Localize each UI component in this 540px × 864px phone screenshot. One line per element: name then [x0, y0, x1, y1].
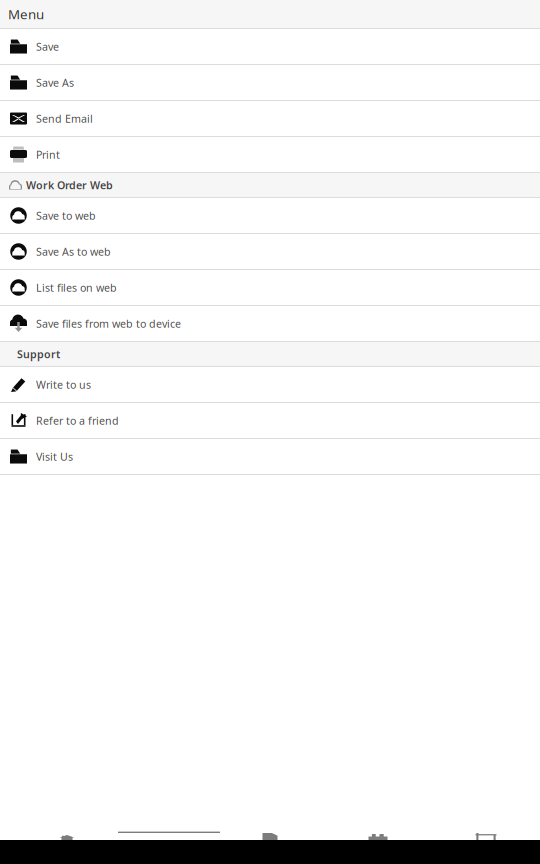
staticText: Send Email — [36, 111, 93, 126]
staticText: Support — [17, 347, 60, 361]
staticText: List files on web — [36, 280, 117, 295]
staticText: Write to us — [36, 377, 91, 392]
button[interactable]: Save As to web — [0, 234, 540, 270]
button[interactable]: Visit Us — [0, 439, 540, 475]
staticText: Menu — [8, 5, 44, 23]
staticText: Save As — [36, 75, 74, 90]
button[interactable]: List files on web — [0, 270, 540, 306]
button[interactable]: Refer to a friend — [0, 403, 540, 439]
button[interactable]: Send Email — [0, 101, 540, 137]
button[interactable]: Save to web — [0, 198, 540, 234]
staticText: Work Order Web — [26, 178, 113, 192]
staticText: Save files from web to device — [36, 316, 181, 331]
button[interactable]: Write to us — [0, 367, 540, 403]
staticText: Visit Us — [36, 449, 73, 464]
button[interactable]: Dispatch — [324, 809, 432, 840]
button[interactable]: Work Orders — [108, 809, 216, 840]
button[interactable]: Save files from web to device — [0, 306, 540, 342]
staticText: Save As to web — [36, 244, 111, 259]
button[interactable]: Print — [0, 137, 540, 173]
button[interactable]: Save As — [0, 65, 540, 101]
button[interactable]: Equipment — [432, 809, 540, 840]
staticText: Print — [36, 147, 60, 162]
button[interactable]: Save — [0, 29, 540, 65]
button[interactable]: Documents — [216, 809, 324, 840]
button[interactable]: Home — [0, 809, 108, 840]
staticText: Refer to a friend — [36, 413, 119, 428]
staticText: Save to web — [36, 208, 96, 223]
staticText: Save — [36, 39, 59, 54]
